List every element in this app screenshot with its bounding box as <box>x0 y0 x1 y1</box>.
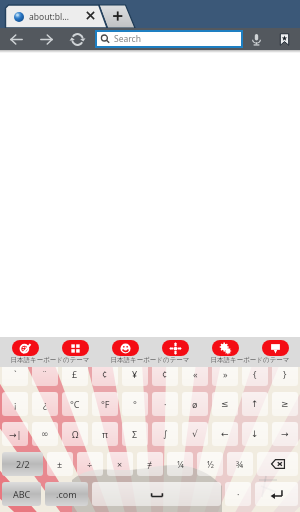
button[interactable]: » <box>212 362 238 386</box>
button[interactable]: New tab <box>99 5 135 28</box>
staticText: ¿ <box>43 398 47 410</box>
button[interactable]: × <box>107 452 133 476</box>
staticText: Ω <box>72 428 79 440</box>
staticText: π <box>102 428 108 440</box>
button[interactable]: ≠ <box>137 452 163 476</box>
button[interactable]: Search <box>97 32 241 46</box>
button[interactable]: ¿ <box>32 392 58 416</box>
button[interactable]: ¾ <box>227 452 253 476</box>
button[interactable]: Keyboard theme 3 <box>100 337 150 367</box>
button[interactable]: →| <box>2 422 28 446</box>
button[interactable]: π <box>92 422 118 446</box>
staticText: °F <box>101 398 110 410</box>
staticText: × <box>117 458 123 470</box>
button[interactable]: Keyboard theme 1 <box>0 337 50 367</box>
button[interactable]: Space <box>92 482 221 506</box>
button[interactable]: ¢ <box>152 362 178 386</box>
button[interactable]: · <box>152 392 178 416</box>
button[interactable]: ≤ <box>212 392 238 416</box>
button[interactable]: ¢ <box>92 362 118 386</box>
staticText: ∞ <box>41 429 49 439</box>
button[interactable]: ∫ <box>152 422 178 446</box>
staticText: ABC <box>13 488 31 500</box>
staticText: ø <box>192 398 198 410</box>
staticText: ¡ <box>14 398 17 410</box>
staticText: £ <box>72 368 78 380</box>
button[interactable]: ↑ <box>242 392 268 416</box>
button[interactable]: ¡ <box>2 392 28 416</box>
staticText: ½ <box>207 458 214 470</box>
staticText: ≥ <box>281 399 289 409</box>
button[interactable]: Keyboard theme 2 <box>50 337 100 367</box>
staticText: about:bl… <box>29 11 69 23</box>
button[interactable]: Keyboard theme 4 <box>150 337 200 367</box>
staticText: ← <box>221 429 229 439</box>
button[interactable]: Forward <box>32 28 61 50</box>
staticText: ≠ <box>147 458 153 470</box>
button[interactable]: Reload <box>63 28 92 50</box>
button[interactable]: ∞ <box>32 422 58 446</box>
button[interactable]: ABC <box>2 482 41 506</box>
button[interactable]: { <box>242 362 268 386</box>
staticText: → <box>281 429 289 439</box>
button[interactable]: ¨ <box>32 362 58 386</box>
staticText: ÷ <box>87 458 93 470</box>
button[interactable]: ≥ <box>272 392 298 416</box>
button[interactable]: ø <box>182 392 208 416</box>
button[interactable]: √ <box>182 422 208 446</box>
button[interactable]: Backspace <box>257 452 298 476</box>
staticText: ¢ <box>162 368 168 380</box>
button[interactable]: °C <box>62 392 88 416</box>
button[interactable]: → <box>272 422 298 446</box>
button[interactable]: ½ <box>197 452 223 476</box>
button[interactable]: · <box>225 482 251 506</box>
staticText: Σ <box>132 428 138 440</box>
staticText: Search <box>114 33 141 45</box>
button[interactable]: ¼ <box>167 452 193 476</box>
button[interactable]: ° <box>122 392 148 416</box>
staticText: ¾ <box>236 458 244 470</box>
button[interactable]: °F <box>92 392 118 416</box>
button[interactable]: Close tab <box>84 9 97 22</box>
staticText: ° <box>133 398 137 410</box>
button[interactable]: Back <box>2 28 31 50</box>
staticText: ± <box>57 458 63 470</box>
staticText: ¥ <box>132 368 138 380</box>
staticText: 日本語キーボードのテーマ <box>200 356 300 364</box>
staticText: ¨ <box>42 368 48 380</box>
staticText: ↑ <box>251 399 259 409</box>
button[interactable]: ← <box>212 422 238 446</box>
staticText: 日本語キーボードのテーマ <box>100 356 200 364</box>
button[interactable]: « <box>182 362 208 386</box>
button[interactable]: £ <box>62 362 88 386</box>
button[interactable]: ± <box>47 452 73 476</box>
staticText: } <box>283 368 287 380</box>
button[interactable]: ¥ <box>122 362 148 386</box>
staticText: { <box>253 368 257 380</box>
staticText: 2/2 <box>16 458 30 470</box>
button[interactable]: Ω <box>62 422 88 446</box>
button[interactable]: Bookmarks <box>272 28 297 50</box>
button[interactable]: Keyboard theme 6 <box>250 337 300 367</box>
staticText: ¼ <box>177 458 184 470</box>
button[interactable]: ↓ <box>242 422 268 446</box>
staticText: →| <box>9 428 22 440</box>
staticText: ≤ <box>221 399 229 409</box>
staticText: 日本語キーボードのテーマ <box>0 356 100 364</box>
staticText: · <box>164 398 167 410</box>
button[interactable]: Voice search <box>243 28 269 50</box>
staticText: ¢ <box>102 368 108 380</box>
staticText: « <box>193 368 198 380</box>
button[interactable]: Enter <box>255 482 298 506</box>
button[interactable]: ` <box>2 362 28 386</box>
button[interactable]: } <box>272 362 298 386</box>
button[interactable]: 2/2 <box>2 452 43 476</box>
button[interactable]: ÷ <box>77 452 103 476</box>
button[interactable]: Σ <box>122 422 148 446</box>
button[interactable]: .com <box>45 482 88 506</box>
staticText: ∫ <box>163 429 168 439</box>
button[interactable]: Keyboard theme 5 <box>200 337 250 367</box>
staticText: √ <box>192 429 198 439</box>
button[interactable]: about:bl… <box>5 5 99 28</box>
staticText: » <box>223 368 228 380</box>
